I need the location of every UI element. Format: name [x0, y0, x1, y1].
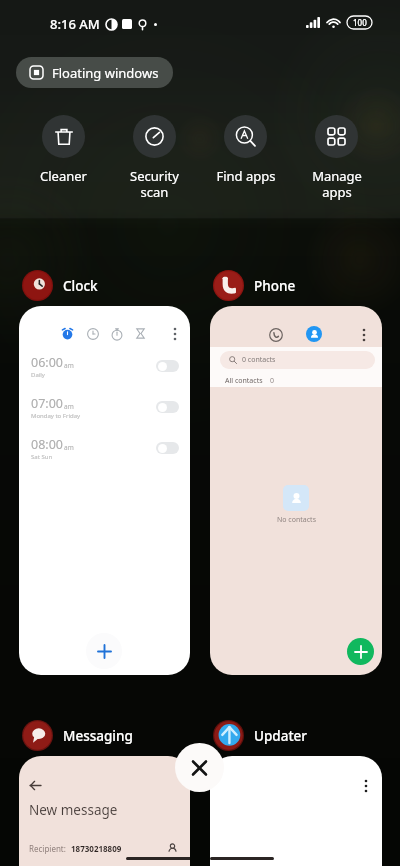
- button[interactable]: Add alarm: [86, 633, 122, 669]
- button[interactable]: Toggle alarm: [156, 442, 179, 454]
- staticText: Phone: [254, 277, 296, 295]
- button[interactable]: Back: [19, 756, 190, 866]
- button[interactable]: 06:00: [31, 351, 179, 381]
- button[interactable]: Toggle alarm: [156, 401, 179, 413]
- staticText: New message: [29, 801, 118, 819]
- button[interactable]: Toggle alarm: [156, 360, 179, 372]
- staticText: 08:00: [31, 436, 63, 453]
- staticText: Sat Sun: [31, 453, 53, 461]
- button[interactable]: Security scan: [109, 115, 200, 200]
- button[interactable]: 08:00: [31, 433, 179, 463]
- staticText: No contacts: [277, 515, 316, 525]
- staticText: 06:00: [31, 354, 63, 371]
- button[interactable]: Phone: [210, 269, 296, 302]
- button[interactable]: Back: [27, 777, 43, 793]
- staticText: Monday to Friday: [31, 412, 81, 420]
- button[interactable]: More options: [358, 778, 373, 793]
- button[interactable]: Messaging: [19, 719, 133, 752]
- staticText: Updater: [254, 727, 308, 745]
- staticText: 07:00: [31, 395, 63, 412]
- button[interactable]: 0 contacts: [210, 306, 382, 675]
- button[interactable]: 0 contacts: [220, 351, 375, 369]
- staticText: All contacts: [225, 376, 263, 386]
- button[interactable]: Clock: [19, 269, 98, 302]
- button[interactable]: Updater: [210, 719, 308, 752]
- staticText: Find apps: [216, 167, 276, 185]
- button[interactable]: Manage apps: [291, 115, 382, 200]
- button[interactable]: Cleaner: [18, 115, 109, 185]
- staticText: Messaging: [63, 727, 133, 745]
- staticText: 0: [270, 376, 275, 386]
- staticText: Cleaner: [40, 167, 87, 185]
- staticText: Manage apps: [312, 167, 362, 200]
- staticText: 100: [353, 17, 367, 28]
- button[interactable]: Find apps: [200, 115, 291, 185]
- button[interactable]: Close all: [175, 743, 224, 792]
- button[interactable]: More options: [210, 756, 382, 866]
- staticText: am: [64, 361, 74, 370]
- staticText: Recipient:: [29, 843, 66, 854]
- staticText: 0 contacts: [242, 355, 276, 365]
- staticText: Floating windows: [52, 64, 159, 82]
- staticText: 8:16 AM: [50, 15, 100, 33]
- button[interactable]: All contacts: [210, 374, 382, 387]
- button[interactable]: Add contact: [347, 638, 374, 665]
- staticText: Clock: [63, 277, 98, 295]
- staticText: Daily: [31, 371, 45, 379]
- button[interactable]: Floating windows: [16, 57, 173, 88]
- staticText: 18730218809: [71, 843, 122, 854]
- button[interactable]: 07:00: [31, 392, 179, 422]
- staticText: Security scan: [130, 167, 179, 200]
- staticText: am: [64, 402, 74, 411]
- staticText: am: [64, 443, 74, 452]
- button[interactable]: 06:00: [19, 306, 190, 675]
